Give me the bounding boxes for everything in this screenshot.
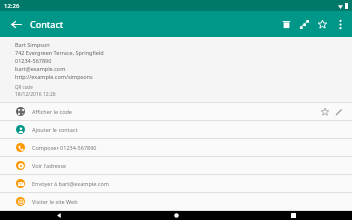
staticText: Visiter le site Web — [32, 198, 346, 205]
staticText: Afficher le code — [32, 108, 318, 115]
button[interactable]: Recent apps — [235, 211, 352, 220]
staticText: 12:26 — [4, 2, 20, 10]
button[interactable]: Back — [6, 14, 26, 34]
staticText: bart@example.com — [15, 65, 66, 72]
staticText: Envoyer à bart@example.com — [32, 180, 346, 187]
staticText: QR code — [15, 84, 33, 90]
button[interactable]: Favorite — [313, 15, 331, 33]
button[interactable]: More options — [331, 15, 349, 33]
staticText: Composer 01234-567890 — [32, 144, 346, 151]
staticText: Contact — [30, 18, 64, 30]
staticText: Voir l'adresse — [32, 162, 346, 169]
button[interactable]: Back — [0, 211, 118, 220]
button[interactable]: Voir l'adresse — [0, 157, 352, 174]
button[interactable]: Ajouter le contact — [0, 121, 352, 138]
button[interactable]: Edit — [332, 105, 346, 119]
staticText: Bart Simpson — [15, 41, 50, 48]
button[interactable]: Visiter le site Web — [0, 193, 352, 210]
staticText: 742 Evergreen Terrace, Springfield — [15, 49, 104, 56]
button[interactable]: Delete — [277, 15, 295, 33]
button[interactable]: Home — [118, 211, 235, 220]
staticText: Ajouter le contact — [32, 126, 346, 133]
button[interactable]: Envoyer à bart@example.com — [0, 175, 352, 192]
button[interactable]: Favorite — [318, 105, 332, 119]
button[interactable]: Afficher le code — [0, 103, 352, 120]
button[interactable]: Composer 01234-567890 — [0, 139, 352, 156]
staticText: http://example.com/simpsons — [15, 73, 93, 80]
button[interactable]: Share — [295, 15, 313, 33]
staticText: 01234-567890 — [15, 57, 52, 64]
staticText: 18/12/2016 12:26 — [15, 91, 56, 98]
